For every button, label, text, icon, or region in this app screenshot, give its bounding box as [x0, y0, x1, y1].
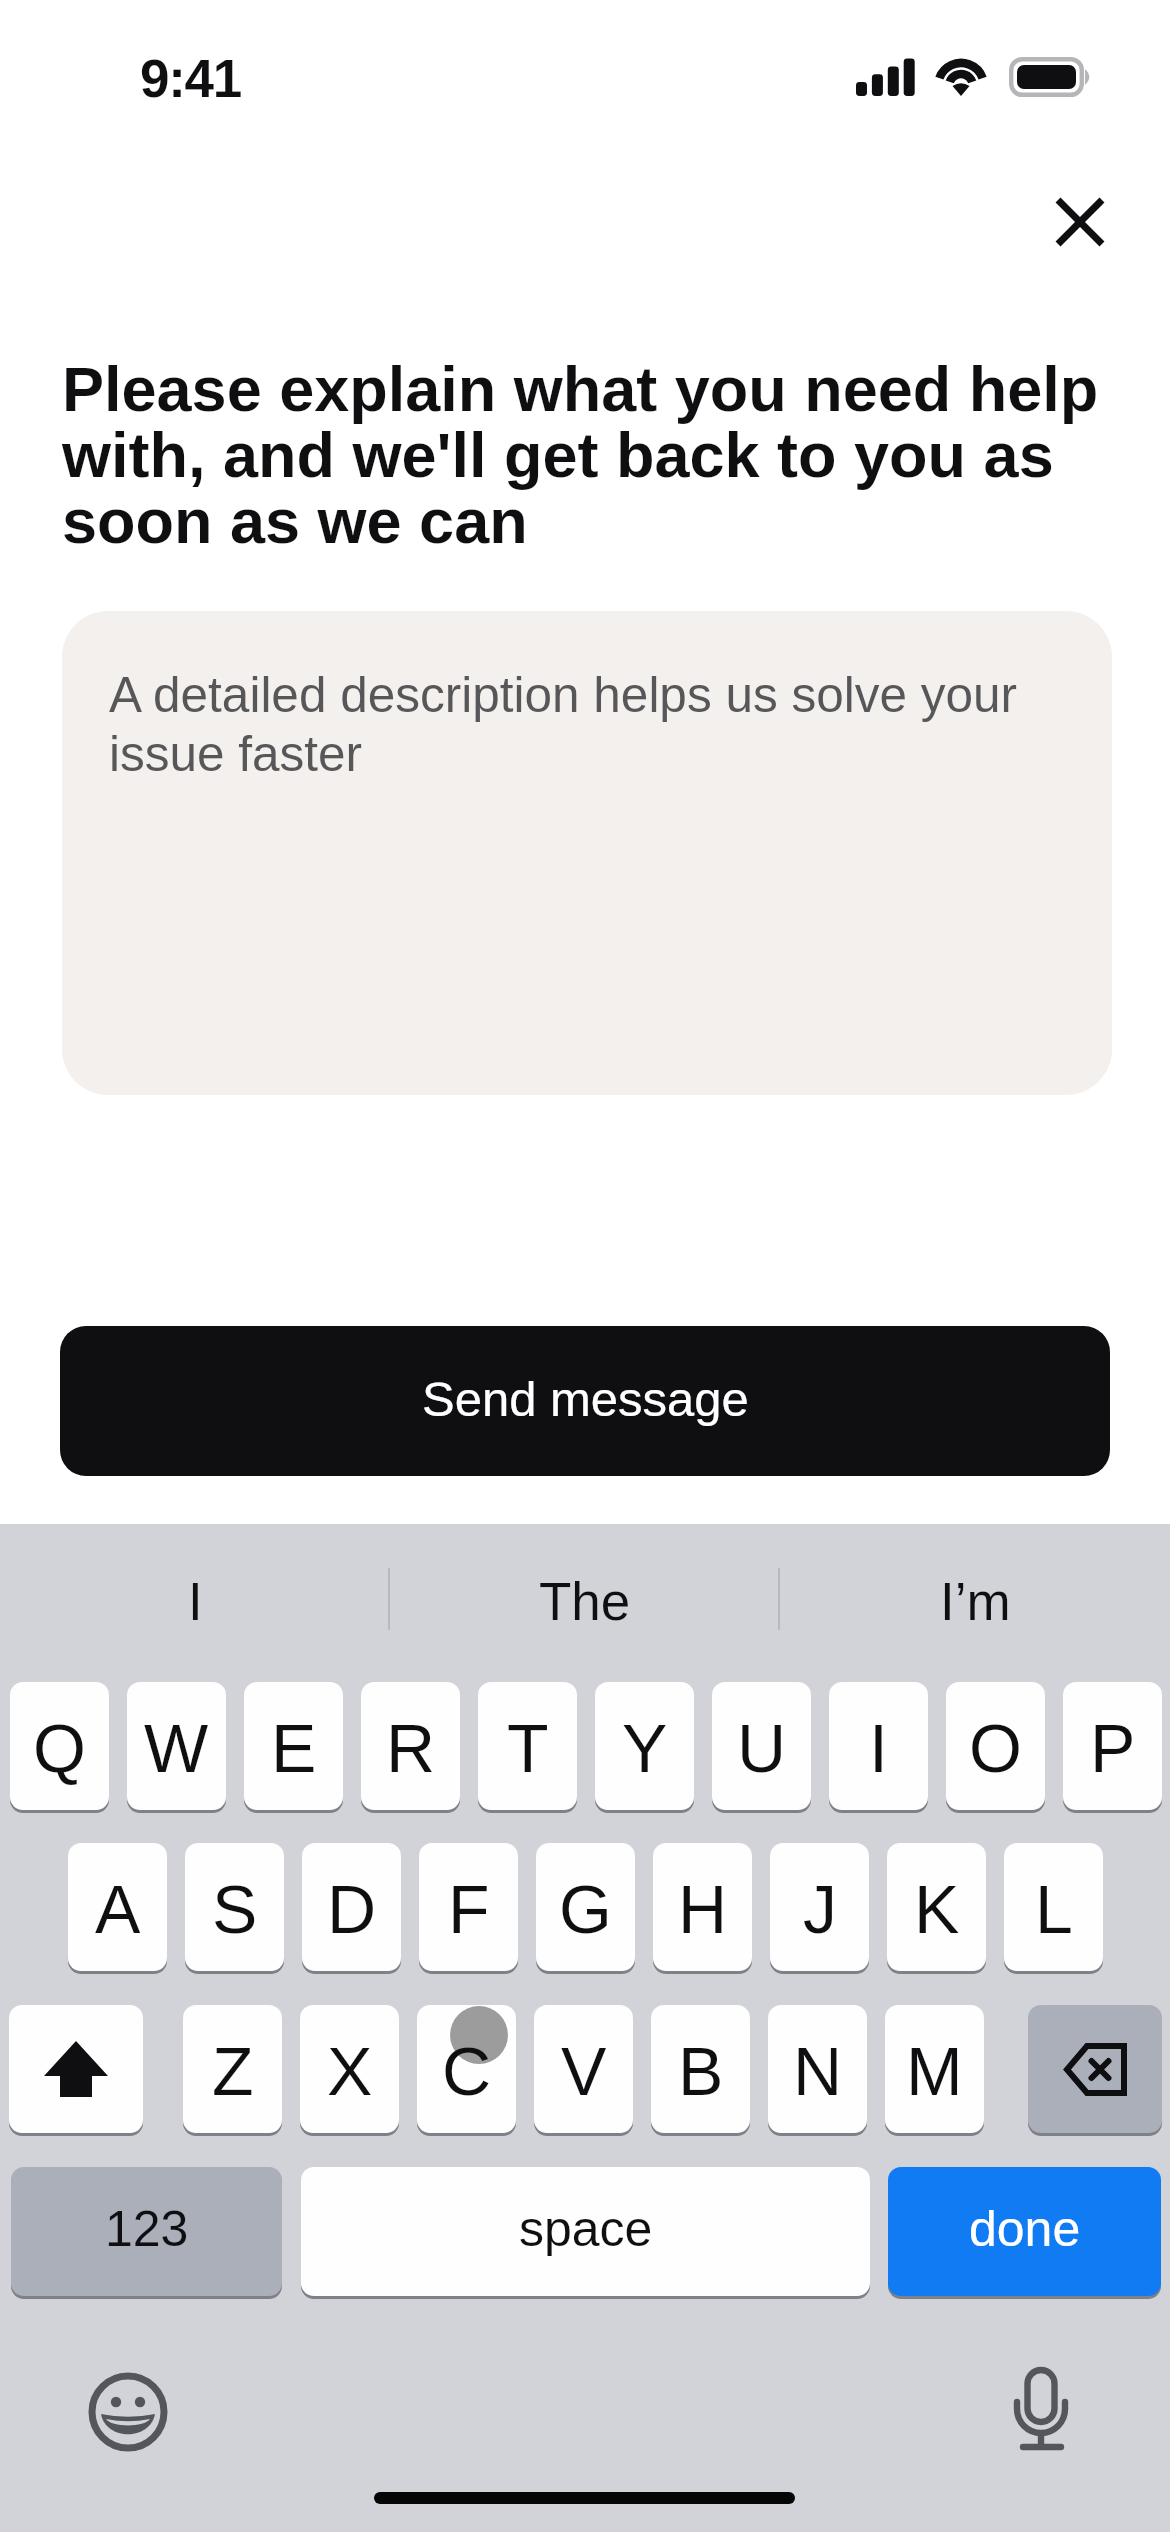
button[interactable]: V	[534, 2005, 633, 2133]
staticText: T	[507, 1710, 549, 1786]
button[interactable]: L	[1004, 1843, 1103, 1971]
staticText: A detailed description helps us solve yo…	[109, 667, 1044, 782]
button[interactable]: J	[770, 1843, 869, 1971]
button[interactable]: done	[888, 2167, 1161, 2296]
staticText: Q	[33, 1710, 86, 1786]
staticText: 9:41	[140, 49, 241, 108]
staticText: E	[271, 1710, 317, 1786]
button[interactable]: X	[300, 2005, 399, 2133]
staticText: Y	[622, 1710, 668, 1786]
button[interactable]: Emoji keyboard	[80, 2364, 176, 2460]
button[interactable]: B	[651, 2005, 750, 2133]
staticText: done	[969, 2201, 1081, 2257]
button[interactable]: Q	[10, 1682, 109, 1810]
staticText: B	[678, 2033, 724, 2109]
button[interactable]: G	[536, 1843, 635, 1971]
button[interactable]: The	[390, 1524, 780, 1654]
staticText: X	[327, 2033, 373, 2109]
button[interactable]: K	[887, 1843, 986, 1971]
staticText: W	[144, 1710, 209, 1786]
button[interactable]: T	[478, 1682, 577, 1810]
staticText: 123	[105, 2201, 189, 2257]
button[interactable]: O	[946, 1682, 1045, 1810]
staticText: U	[737, 1710, 787, 1786]
staticText: J	[803, 1871, 837, 1947]
button[interactable]: Z	[183, 2005, 282, 2133]
button[interactable]: Send message	[60, 1326, 1110, 1476]
staticText: R	[386, 1710, 436, 1786]
staticText: K	[914, 1871, 960, 1947]
staticText: I’m	[940, 1572, 1011, 1631]
staticText: M	[906, 2033, 963, 2109]
staticText: G	[559, 1871, 612, 1947]
staticText: Please explain what you need help with, …	[62, 354, 1122, 556]
button[interactable]: E	[244, 1682, 343, 1810]
button[interactable]: Close	[1032, 174, 1128, 270]
staticText: C	[442, 2033, 492, 2109]
button[interactable]: P	[1063, 1682, 1162, 1810]
button[interactable]: R	[361, 1682, 460, 1810]
staticText: P	[1090, 1710, 1136, 1786]
staticText: The	[539, 1572, 631, 1631]
staticText: L	[1035, 1871, 1073, 1947]
button[interactable]: S	[185, 1843, 284, 1971]
staticText: F	[448, 1871, 490, 1947]
staticText: I	[869, 1710, 888, 1786]
button[interactable]: 123	[11, 2167, 282, 2296]
button[interactable]: C	[417, 2005, 516, 2133]
staticText: D	[327, 1871, 377, 1947]
staticText: A	[95, 1871, 141, 1947]
staticText: O	[969, 1710, 1022, 1786]
button[interactable]: H	[653, 1843, 752, 1971]
staticText: I	[188, 1572, 203, 1631]
button[interactable]: Backspace	[1028, 2005, 1162, 2133]
button[interactable]: Dictation	[995, 2364, 1087, 2456]
button[interactable]: W	[127, 1682, 226, 1810]
button[interactable]: I’m	[780, 1524, 1170, 1654]
staticText: N	[793, 2033, 843, 2109]
staticText: S	[212, 1871, 258, 1947]
button[interactable]: A detailed description helps us solve yo…	[62, 611, 1112, 1095]
staticText: space	[519, 2201, 653, 2257]
staticText: V	[561, 2033, 607, 2109]
button[interactable]: I	[0, 1524, 390, 1654]
button[interactable]: U	[712, 1682, 811, 1810]
button[interactable]: space	[301, 2167, 870, 2296]
staticText: Z	[212, 2033, 254, 2109]
button[interactable]: M	[885, 2005, 984, 2133]
button[interactable]: Shift	[9, 2005, 143, 2133]
button[interactable]: A	[68, 1843, 167, 1971]
button[interactable]: F	[419, 1843, 518, 1971]
staticText: H	[678, 1871, 728, 1947]
button[interactable]: D	[302, 1843, 401, 1971]
button[interactable]: Y	[595, 1682, 694, 1810]
staticText: Send message	[422, 1372, 749, 1427]
button[interactable]: N	[768, 2005, 867, 2133]
button[interactable]: I	[829, 1682, 928, 1810]
